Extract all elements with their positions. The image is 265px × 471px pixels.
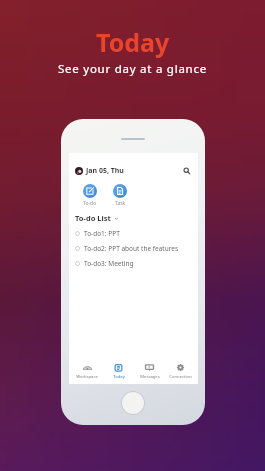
staticText: To-do List (75, 213, 111, 223)
staticText: Messages (140, 374, 160, 380)
staticText: See your day at a glance (58, 61, 207, 77)
button[interactable]: Search (181, 165, 193, 177)
staticText: To-do1: PPT (84, 229, 120, 238)
staticText: Workspace (76, 374, 98, 380)
staticText: Connection (169, 374, 192, 380)
staticText: To-do (83, 200, 97, 207)
staticText: Today (96, 25, 170, 59)
button[interactable]: To-do2: PPT about the features (69, 241, 198, 256)
staticText: Today (113, 374, 125, 380)
button[interactable]: Today (103, 363, 134, 380)
staticText: Jan 05, Thu (86, 166, 124, 176)
button[interactable]: Connection (165, 363, 196, 380)
button[interactable]: To-do (83, 184, 97, 207)
button[interactable]: Task (113, 184, 127, 207)
button[interactable]: Home (121, 391, 145, 415)
button[interactable]: Messages (134, 363, 165, 380)
staticText: Task (115, 200, 126, 207)
button[interactable]: Workspace (71, 363, 103, 380)
button[interactable]: To-do1: PPT (69, 226, 198, 241)
staticText: To-do3: Meeting (84, 259, 134, 268)
staticText: To-do2: PPT about the features (84, 244, 179, 253)
button[interactable]: To-do3: Meeting (69, 256, 198, 271)
